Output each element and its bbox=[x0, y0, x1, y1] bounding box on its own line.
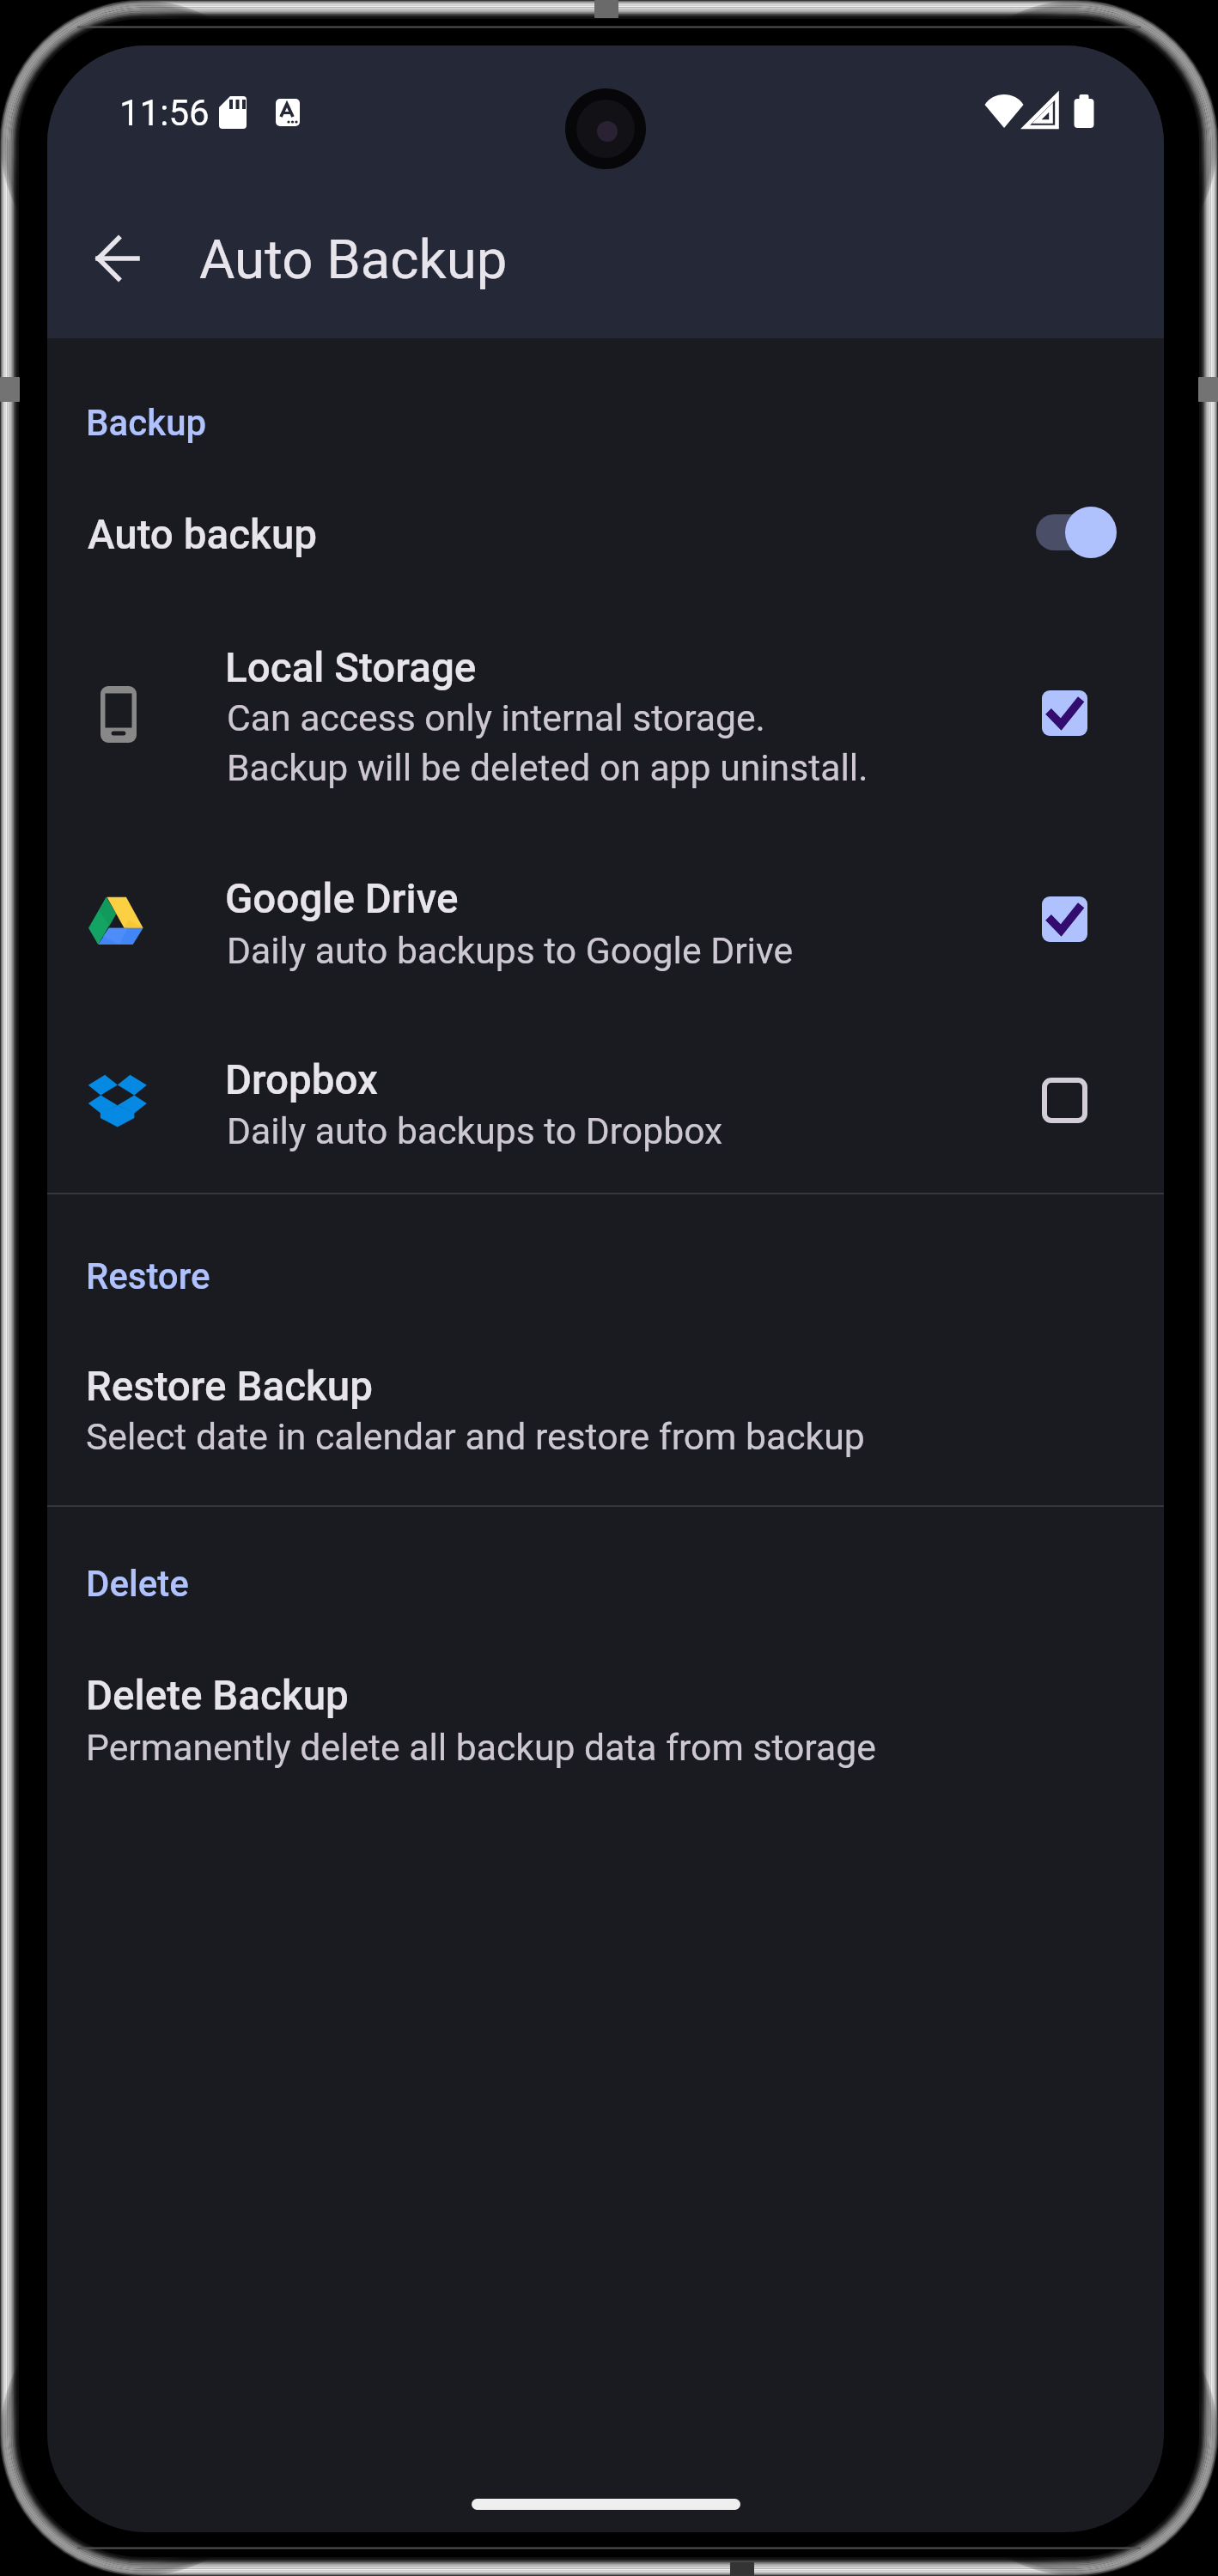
staticText: Daily auto backups to Dropbox bbox=[227, 1109, 723, 1152]
staticText: Can access only internal storage. bbox=[227, 696, 765, 739]
button[interactable] bbox=[47, 596, 1164, 793]
staticText: Select date in calendar and restore from… bbox=[86, 1415, 865, 1458]
staticText: Permanently delete all backup data from … bbox=[86, 1726, 876, 1769]
staticText: Restore bbox=[86, 1255, 210, 1297]
button[interactable] bbox=[47, 844, 1164, 1007]
staticText: Restore Backup bbox=[86, 1363, 373, 1411]
staticText: 11:56 bbox=[119, 92, 210, 134]
staticText: Delete bbox=[86, 1563, 189, 1605]
staticText: Auto backup bbox=[88, 511, 318, 559]
button[interactable] bbox=[47, 1024, 1164, 1188]
staticText: Daily auto backups to Google Drive bbox=[227, 929, 794, 972]
button[interactable] bbox=[47, 1316, 1164, 1505]
button[interactable]: Back bbox=[76, 217, 159, 301]
staticText: Dropbox bbox=[225, 1056, 378, 1104]
staticText: Local Storage bbox=[225, 644, 477, 692]
staticText: Backup bbox=[86, 402, 207, 444]
staticText: Auto Backup bbox=[199, 228, 508, 291]
staticText: Backup will be deleted on app uninstall. bbox=[227, 746, 868, 789]
button[interactable] bbox=[47, 1625, 1164, 1814]
staticText: Google Drive bbox=[225, 875, 459, 923]
button[interactable] bbox=[47, 484, 1164, 596]
staticText: Delete Backup bbox=[86, 1672, 349, 1720]
